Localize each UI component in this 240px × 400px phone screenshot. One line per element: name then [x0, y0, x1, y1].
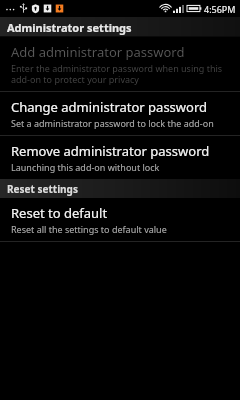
staticText: Remove administrator password — [11, 142, 210, 160]
button[interactable]: Add administrator password — [0, 37, 240, 91]
staticText: Enter the administrator password when us… — [11, 62, 230, 85]
staticText: Set a administrator password to lock the… — [11, 117, 214, 129]
staticText: Reset all the settings to default value — [11, 223, 167, 235]
button[interactable]: Change administrator password — [0, 92, 240, 135]
staticText: Reset settings — [7, 182, 78, 196]
other: Signal strength — [173, 4, 184, 13]
other: Download — [55, 3, 64, 14]
other: Battery — [187, 4, 202, 13]
staticText: Reset to default — [11, 204, 108, 222]
staticText: Launching this add-on without lock — [11, 161, 160, 173]
other: Wi-Fi — [160, 4, 171, 13]
button[interactable]: Reset to default — [0, 198, 240, 241]
other: Security — [31, 3, 40, 14]
staticText: Change administrator password — [11, 98, 208, 116]
staticText: Administrator settings — [7, 20, 132, 35]
other: Download — [43, 3, 52, 14]
button[interactable]: Remove administrator password — [0, 136, 240, 179]
staticText: Add administrator password — [11, 43, 185, 61]
staticText: 4:56PM — [204, 3, 236, 15]
other: USB — [19, 3, 28, 14]
